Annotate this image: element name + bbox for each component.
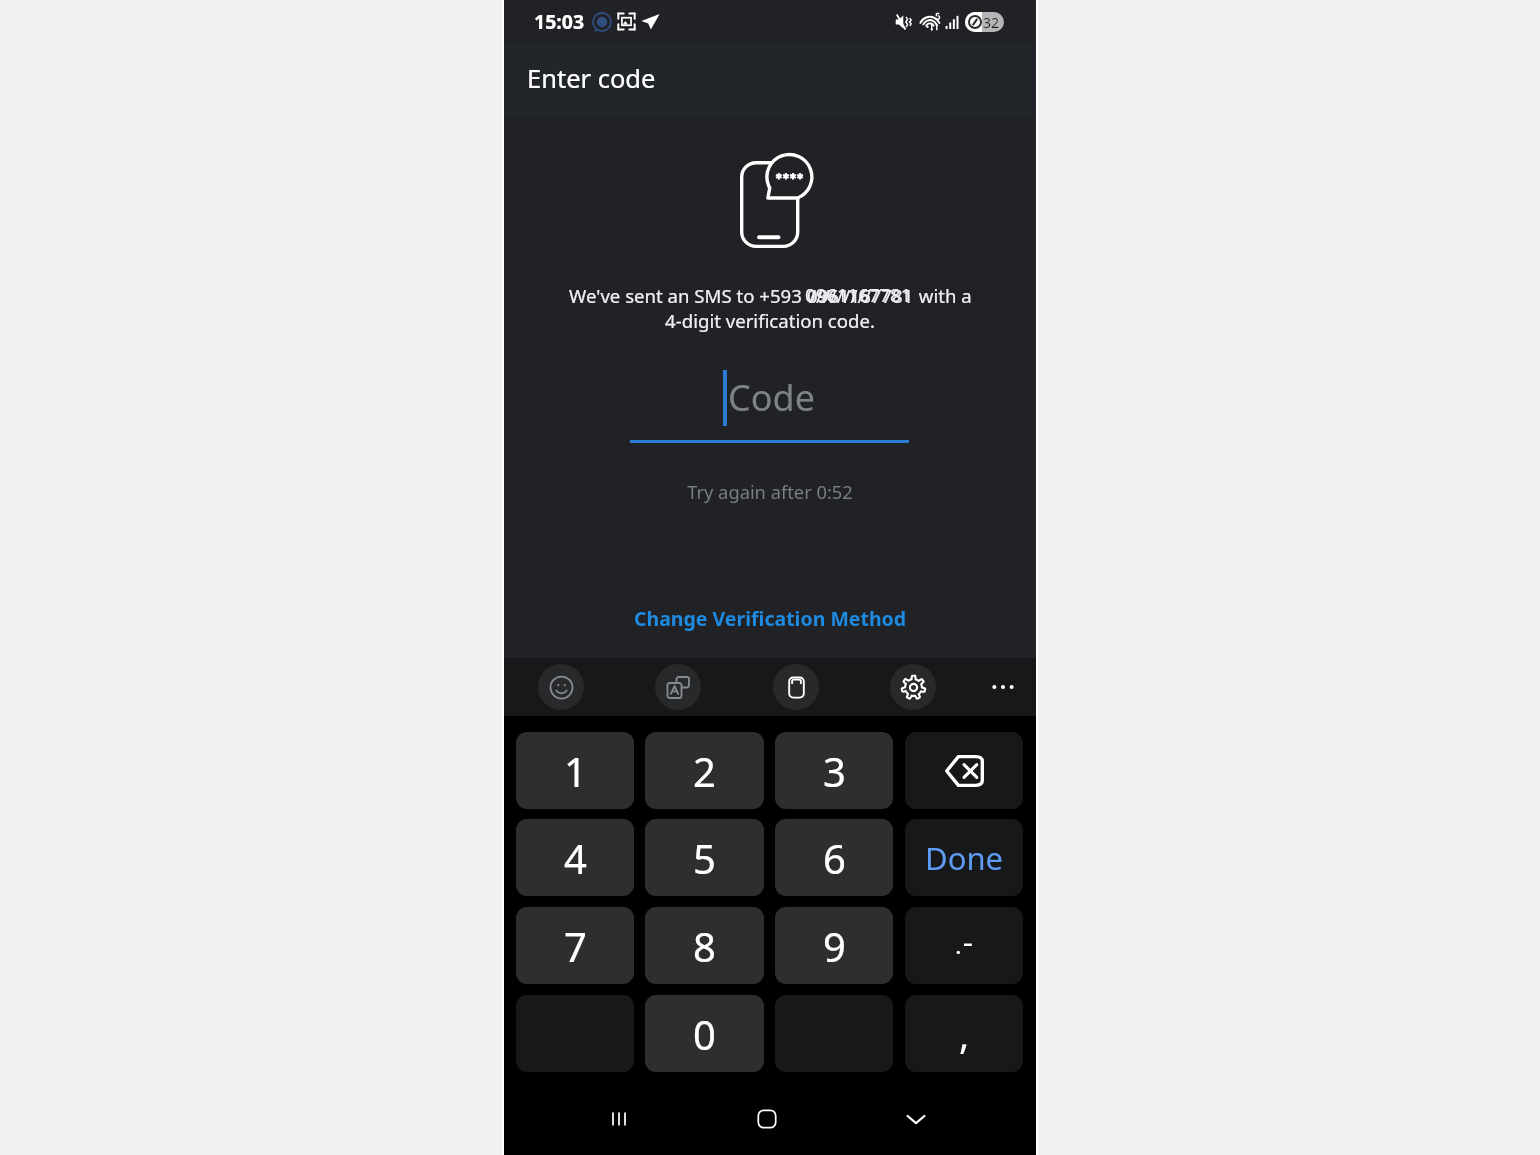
- staticText: 7: [564, 919, 587, 973]
- button[interactable]: 8: [645, 907, 764, 984]
- staticText: 15:03: [534, 8, 585, 35]
- button[interactable]: 5: [645, 819, 764, 896]
- button[interactable]: 1: [516, 732, 634, 809]
- button[interactable]: 4: [516, 819, 634, 896]
- staticText: Change Verification Method: [634, 605, 907, 632]
- staticText: /////////: [809, 283, 872, 308]
- button[interactable]: Home: [727, 1082, 807, 1155]
- staticText: 2: [693, 744, 716, 798]
- staticText: ,: [959, 1008, 970, 1060]
- staticText: Code: [728, 373, 815, 422]
- staticText: with a: [914, 283, 972, 308]
- staticText: 1: [564, 744, 587, 798]
- button[interactable]: Done: [905, 819, 1023, 896]
- staticText: 0961167781: [807, 283, 914, 308]
- button[interactable]: Dot and dash: [905, 907, 1023, 984]
- button[interactable]: 6: [775, 819, 893, 896]
- staticText: Enter code: [527, 61, 656, 96]
- button[interactable]: Clipboard: [773, 664, 819, 710]
- button[interactable]: Change Verification Method: [620, 599, 920, 637]
- button[interactable]: Settings: [890, 664, 936, 710]
- staticText: Done: [925, 837, 1004, 879]
- button[interactable]: 7: [516, 907, 634, 984]
- staticText: 0961167781: [805, 282, 912, 307]
- button[interactable]: 2: [645, 732, 764, 809]
- staticText: We've sent an SMS to +593: [569, 283, 807, 308]
- button[interactable]: 0: [645, 995, 764, 1072]
- staticText: 9: [823, 919, 846, 973]
- staticText: 4: [564, 831, 587, 885]
- button[interactable]: More options: [982, 666, 1024, 708]
- staticText: 5: [693, 831, 716, 885]
- button[interactable]: Translate: [655, 664, 701, 710]
- staticText: 4-digit verification code.: [504, 308, 1036, 333]
- button[interactable]: Back: [876, 1082, 956, 1155]
- button[interactable]: Recents: [579, 1082, 659, 1155]
- button[interactable]: 9: [775, 907, 893, 984]
- staticText: 3: [823, 744, 846, 798]
- staticText: Try again after 0:52: [504, 479, 1036, 504]
- button[interactable]: ,: [905, 995, 1023, 1072]
- staticText: 6: [823, 831, 846, 885]
- button[interactable]: Emoji: [538, 664, 584, 710]
- button[interactable]: 3: [775, 732, 893, 809]
- staticText: 0: [693, 1007, 716, 1061]
- staticText: 8: [693, 919, 716, 973]
- staticText: 32: [983, 13, 1000, 32]
- button[interactable]: Backspace: [905, 732, 1023, 809]
